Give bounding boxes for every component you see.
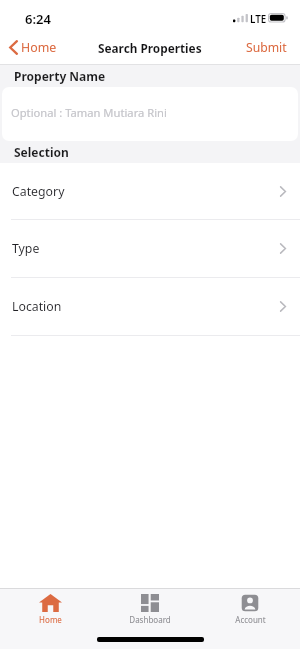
button[interactable]: Account — [200, 589, 300, 630]
button[interactable]: Submit — [246, 39, 287, 56]
button[interactable]: Dashboard — [100, 589, 200, 630]
staticText: Category — [12, 183, 65, 200]
staticText: Optional : Taman Mutiara Rini — [11, 105, 167, 120]
staticText: LTE — [250, 13, 267, 26]
staticText: Home — [21, 39, 57, 56]
staticText: Property Name — [14, 68, 106, 84]
button[interactable]: Home — [0, 589, 100, 630]
staticText: 6:24 — [25, 10, 51, 28]
staticText: Selection — [14, 144, 69, 160]
button[interactable]: Home — [9, 39, 57, 56]
staticText: Dashboard — [129, 614, 171, 625]
staticText: Search Properties — [98, 40, 202, 56]
staticText: Home — [39, 614, 62, 625]
button[interactable]: Location — [0, 278, 300, 336]
button[interactable]: Type — [0, 220, 300, 278]
staticText: Location — [12, 298, 62, 315]
staticText: Type — [12, 240, 40, 257]
button[interactable]: Optional : Taman Mutiara Rini — [2, 87, 298, 141]
button[interactable]: Category — [0, 163, 300, 220]
staticText: Account — [235, 614, 266, 625]
